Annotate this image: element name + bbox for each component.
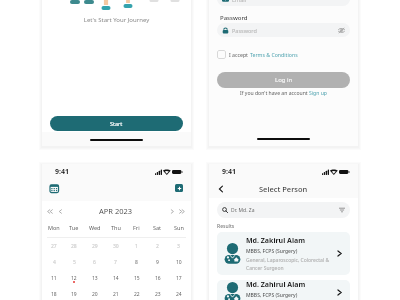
button[interactable]: 3 <box>168 238 189 254</box>
staticText: Password <box>232 27 257 34</box>
button[interactable]: 8 <box>126 254 147 270</box>
button[interactable]: Back <box>216 184 226 194</box>
staticText: Email <box>232 0 247 3</box>
staticText: Log in <box>275 76 293 84</box>
staticText: 9 <box>156 259 159 266</box>
button[interactable]: 16 <box>147 270 168 286</box>
button[interactable]: Previous month <box>58 208 63 215</box>
button[interactable]: 9 <box>147 254 168 270</box>
staticText: 16 <box>155 275 161 282</box>
staticText: Start <box>110 120 123 127</box>
staticText: 5 <box>73 259 76 266</box>
button[interactable]: 10 <box>168 254 189 270</box>
button[interactable]: 2 <box>147 238 168 254</box>
staticText: 6 <box>93 259 96 266</box>
button[interactable]: 15 <box>126 270 147 286</box>
button[interactable]: 30 <box>105 238 126 254</box>
button[interactable]: 24 <box>168 286 189 300</box>
button[interactable]: 18 <box>44 286 64 300</box>
staticText: General, Laparoscopic, Colorectal & Canc… <box>246 257 333 272</box>
staticText: Dr. Md. Za <box>231 207 255 214</box>
staticText: MBBS, FCPS (Surgery) <box>246 248 298 255</box>
staticText: 23 <box>155 291 161 298</box>
button[interactable]: I accept <box>217 50 298 59</box>
staticText: 29 <box>92 243 98 250</box>
button[interactable]: 21 <box>105 286 126 300</box>
staticText: Sat <box>153 224 162 231</box>
staticText: 22 <box>134 291 140 298</box>
staticText: 14 <box>113 275 119 282</box>
button[interactable]: 5 <box>64 254 84 270</box>
button[interactable]: Md. Zahirul Alam <box>217 280 350 300</box>
button[interactable]: 6 <box>84 254 105 270</box>
staticText: 4 <box>53 259 56 266</box>
staticText: Md. Zahirul Alam <box>246 280 306 290</box>
button[interactable]: 22 <box>126 286 147 300</box>
staticText: 17 <box>176 275 182 282</box>
button[interactable]: Md. Zakirul Alam <box>217 232 350 275</box>
staticText: Let's Start Your Journey <box>42 16 191 24</box>
button[interactable]: Log in <box>217 72 350 88</box>
staticText: Fri <box>133 224 140 231</box>
staticText: 15 <box>134 275 140 282</box>
staticText: 9:41 <box>222 167 236 177</box>
staticText: 12 <box>71 275 77 282</box>
staticText: If you don't have an account <box>240 90 309 97</box>
staticText: 11 <box>51 275 57 282</box>
staticText: 19 <box>71 291 77 298</box>
staticText: 18 <box>51 291 57 298</box>
button[interactable]: Add event <box>175 184 183 192</box>
staticText: 7 <box>114 259 117 266</box>
button[interactable]: 11 <box>44 270 64 286</box>
button[interactable]: 12 <box>64 270 84 286</box>
button[interactable]: Previous year <box>47 208 54 215</box>
button[interactable]: Start <box>50 116 183 131</box>
button[interactable]: Email <box>222 0 345 6</box>
staticText: Results <box>217 223 235 230</box>
button[interactable]: 4 <box>44 254 64 270</box>
staticText: APR 2023 <box>99 206 133 216</box>
button[interactable]: 29 <box>84 238 105 254</box>
button[interactable]: 20 <box>84 286 105 300</box>
other: Show password <box>338 27 345 34</box>
staticText: I accept <box>229 51 250 58</box>
staticText: Terms & Conditions <box>250 51 298 58</box>
staticText: 21 <box>113 291 119 298</box>
staticText: 2 <box>156 243 159 250</box>
staticText: 30 <box>113 243 119 250</box>
button[interactable]: Dr. Md. Za <box>217 202 350 218</box>
button[interactable]: 19 <box>64 286 84 300</box>
staticText: 1 <box>135 243 138 250</box>
button[interactable]: 7 <box>105 254 126 270</box>
staticText: 8 <box>135 259 138 266</box>
button[interactable]: Schedule <box>50 184 59 193</box>
staticText: Sun <box>174 224 184 231</box>
button[interactable]: 23 <box>147 286 168 300</box>
staticText: 24 <box>176 291 182 298</box>
button[interactable]: 14 <box>105 270 126 286</box>
other: Filter <box>339 207 345 213</box>
staticText: Wed <box>89 224 101 231</box>
staticText: Tue <box>69 224 79 231</box>
staticText: 3 <box>177 243 180 250</box>
button[interactable]: 13 <box>84 270 105 286</box>
staticText: 20 <box>92 291 98 298</box>
staticText: Mon <box>48 224 60 231</box>
staticText: 10 <box>176 259 182 266</box>
button[interactable]: 28 <box>64 238 84 254</box>
button[interactable]: 1 <box>126 238 147 254</box>
button[interactable]: 17 <box>168 270 189 286</box>
staticText: Password <box>220 14 248 22</box>
staticText: 27 <box>51 243 57 250</box>
button[interactable]: Next month <box>170 208 175 215</box>
staticText: Select Person <box>259 184 308 194</box>
staticText: 13 <box>92 275 98 282</box>
staticText: 28 <box>71 243 77 250</box>
button[interactable]: Next year <box>179 208 186 215</box>
staticText: MBBS, FCPS (Surgery) <box>246 292 298 299</box>
button[interactable]: 27 <box>44 238 64 254</box>
staticText: 9:41 <box>55 167 69 177</box>
button[interactable]: Password <box>222 23 345 37</box>
staticText: Md. Zakirul Alam <box>246 236 306 246</box>
button[interactable]: Sign up <box>309 90 327 97</box>
